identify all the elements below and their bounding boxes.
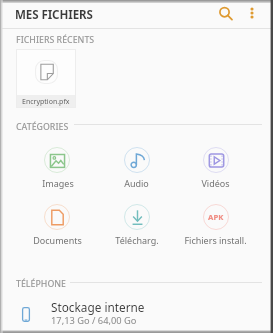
button[interactable] (176, 143, 255, 187)
staticText: Stockage interne (51, 299, 145, 315)
button[interactable]: Plus d'options (243, 4, 261, 22)
staticText: TÉLÉPHONE (16, 278, 67, 290)
staticText: Fichiers install. (184, 234, 247, 246)
button[interactable] (176, 201, 255, 245)
staticText: Documents (33, 234, 82, 246)
staticText: MES FICHIERS (15, 7, 93, 23)
staticText: Audio (124, 177, 149, 189)
button[interactable] (97, 201, 176, 245)
button[interactable]: Encryption.pfx (16, 49, 76, 108)
staticText: FICHIERS RÉCENTS (16, 34, 95, 46)
staticText: Encryption.pfx (22, 97, 70, 107)
button[interactable] (2, 292, 271, 331)
staticText: 17,13 Go / 64,00 Go (51, 314, 137, 327)
staticText: APK (208, 212, 224, 222)
staticText: Télécharg. (115, 234, 159, 246)
button[interactable] (18, 201, 97, 245)
staticText: Images (42, 177, 74, 189)
staticText: Vidéos (201, 177, 230, 189)
button[interactable] (18, 143, 97, 187)
button[interactable]: Rechercher (214, 2, 235, 23)
button[interactable] (97, 143, 176, 187)
staticText: CATÉGORIES (16, 121, 69, 133)
